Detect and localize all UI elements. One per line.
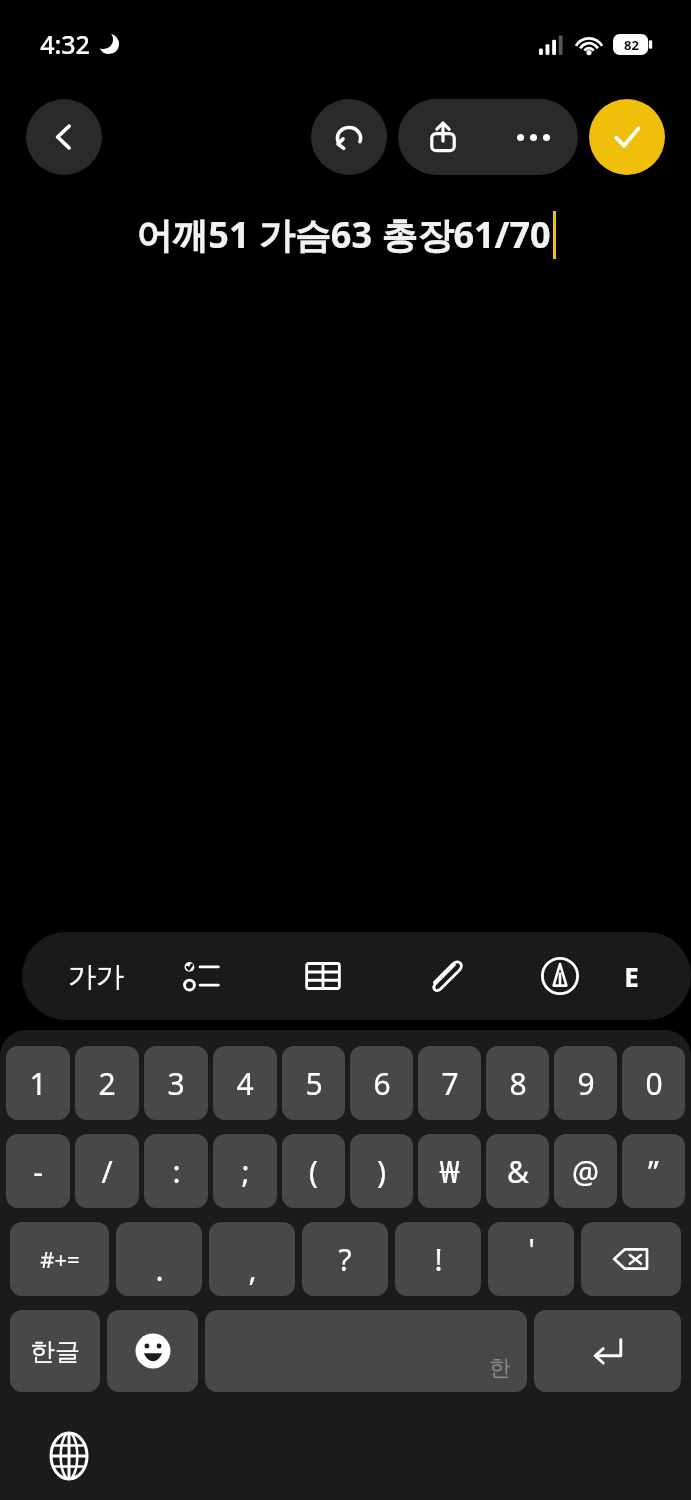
- button[interactable]: :: [144, 1134, 208, 1208]
- staticText: 9: [577, 1063, 595, 1104]
- staticText: .: [155, 1249, 164, 1290]
- staticText: 82: [624, 36, 639, 54]
- button[interactable]: Emoji: [107, 1310, 198, 1392]
- staticText: 한: [489, 1354, 511, 1382]
- staticText: 어깨51 가슴63 총장61/70: [136, 210, 551, 259]
- staticText: 6: [373, 1063, 391, 1104]
- button[interactable]: Space: [205, 1310, 527, 1392]
- staticText: /: [101, 1151, 113, 1192]
- staticText: 2: [98, 1063, 116, 1104]
- button[interactable]: 2: [75, 1046, 139, 1120]
- staticText: 4:32: [40, 27, 90, 61]
- button[interactable]: -: [6, 1134, 70, 1208]
- button[interactable]: @: [554, 1134, 617, 1208]
- button[interactable]: Done: [589, 99, 665, 175]
- staticText: 0: [645, 1063, 663, 1104]
- staticText: #+=: [40, 1244, 80, 1274]
- button[interactable]: ': [488, 1222, 574, 1296]
- button[interactable]: Enter: [534, 1310, 681, 1392]
- button[interactable]: 한글: [10, 1310, 100, 1392]
- staticText: ': [528, 1229, 535, 1270]
- button[interactable]: Attach: [384, 932, 504, 1020]
- staticText: &: [507, 1151, 529, 1192]
- button[interactable]: 7: [418, 1046, 481, 1120]
- button[interactable]: #+=: [10, 1222, 109, 1296]
- staticText: 한글: [30, 1336, 80, 1367]
- staticText: 4: [236, 1063, 254, 1104]
- button[interactable]: .: [116, 1222, 202, 1296]
- staticText: :: [172, 1151, 181, 1192]
- staticText: ): [377, 1151, 386, 1192]
- staticText: ;: [241, 1151, 250, 1192]
- staticText: 가가: [68, 959, 124, 994]
- staticText: ,: [248, 1249, 257, 1290]
- button[interactable]: 3: [144, 1046, 208, 1120]
- staticText: ?: [338, 1239, 352, 1280]
- button[interactable]: ₩: [418, 1134, 481, 1208]
- button[interactable]: ;: [213, 1134, 277, 1208]
- button[interactable]: 4: [213, 1046, 277, 1120]
- staticText: 3: [167, 1063, 185, 1104]
- staticText: 8: [509, 1063, 527, 1104]
- staticText: 1: [29, 1063, 47, 1104]
- button[interactable]: Change language: [42, 1429, 96, 1483]
- button[interactable]: 5: [282, 1046, 345, 1120]
- button[interactable]: !: [395, 1222, 481, 1296]
- button[interactable]: Share: [398, 99, 488, 175]
- button[interactable]: 1: [6, 1046, 70, 1120]
- button[interactable]: Checklist: [142, 932, 262, 1020]
- staticText: @: [572, 1151, 599, 1192]
- button[interactable]: 가가: [50, 932, 142, 1020]
- button[interactable]: 0: [622, 1046, 685, 1120]
- button[interactable]: Undo: [311, 99, 387, 175]
- staticText: ₩: [439, 1151, 460, 1192]
- button[interactable]: (: [282, 1134, 345, 1208]
- staticText: (: [309, 1151, 318, 1192]
- button[interactable]: 9: [554, 1046, 617, 1120]
- button[interactable]: &: [486, 1134, 549, 1208]
- button[interactable]: Draw: [504, 932, 616, 1020]
- button[interactable]: More: [616, 932, 691, 1020]
- staticText: E: [624, 959, 639, 994]
- button[interactable]: ,: [209, 1222, 295, 1296]
- staticText: -: [33, 1151, 43, 1192]
- button[interactable]: ): [350, 1134, 413, 1208]
- staticText: 5: [305, 1063, 323, 1104]
- button[interactable]: ?: [302, 1222, 388, 1296]
- staticText: ”: [648, 1151, 659, 1192]
- button[interactable]: 6: [350, 1046, 413, 1120]
- button[interactable]: Back: [26, 99, 102, 175]
- button[interactable]: ”: [622, 1134, 685, 1208]
- button[interactable]: /: [75, 1134, 139, 1208]
- staticText: 7: [441, 1063, 459, 1104]
- button[interactable]: Backspace: [581, 1222, 681, 1296]
- staticText: !: [434, 1239, 443, 1280]
- button[interactable]: Table: [262, 932, 384, 1020]
- button[interactable]: 8: [486, 1046, 549, 1120]
- button[interactable]: More options: [488, 99, 578, 175]
